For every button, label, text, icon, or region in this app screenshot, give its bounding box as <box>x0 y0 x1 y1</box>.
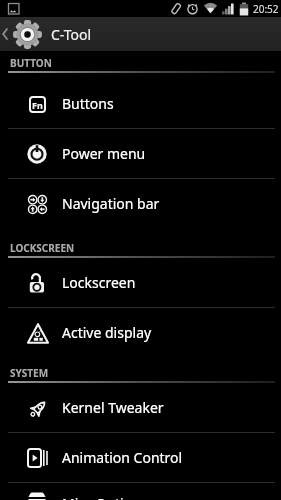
staticText: SYSTEM <box>10 366 49 380</box>
staticText: BUTTON <box>10 56 52 70</box>
button[interactable]: Fn <box>0 79 281 128</box>
staticText: Fn <box>32 99 43 111</box>
button[interactable]: Active display <box>0 308 281 357</box>
staticText: Buttons <box>62 94 114 113</box>
staticText: Lockscreen <box>62 273 136 292</box>
staticText: LOCKSCREEN <box>10 241 75 255</box>
staticText: Navigation bar <box>62 194 160 213</box>
staticText: Animation Control <box>62 448 183 467</box>
button[interactable]: Lockscreen <box>0 258 281 307</box>
button[interactable]: Navigation bar <box>0 179 281 228</box>
staticText: C-Tool <box>51 25 92 44</box>
button[interactable]: C-Tool <box>0 17 281 51</box>
staticText: Active display <box>62 323 152 342</box>
button[interactable]: Kernel Tweaker <box>0 383 281 432</box>
staticText: Misc Option <box>62 494 141 500</box>
button[interactable]: Power menu <box>0 129 281 178</box>
button[interactable]: Misc Option <box>0 483 281 500</box>
staticText: Kernel Tweaker <box>62 398 164 417</box>
staticText: Power menu <box>62 144 146 163</box>
staticText: 20:52 <box>253 2 279 16</box>
button[interactable]: Animation Control <box>0 433 281 482</box>
